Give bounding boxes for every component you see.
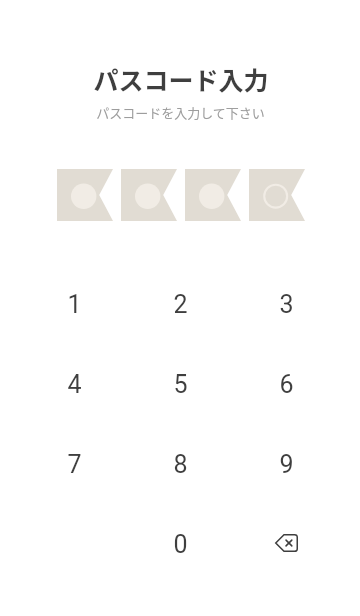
- button[interactable]: 6: [233, 344, 339, 424]
- staticText: 2: [173, 290, 188, 319]
- button[interactable]: 8: [127, 424, 233, 504]
- button[interactable]: 3: [233, 264, 339, 344]
- button[interactable]: 2: [127, 264, 233, 344]
- staticText: パスコードを入力して下さい: [96, 103, 265, 122]
- staticText: 9: [279, 450, 294, 479]
- button[interactable]: 1: [21, 264, 127, 344]
- button[interactable]: 4: [21, 344, 127, 424]
- staticText: 6: [279, 370, 294, 399]
- button[interactable]: 5: [127, 344, 233, 424]
- staticText: 1: [67, 290, 82, 319]
- staticText: 7: [67, 450, 82, 479]
- staticText: 3: [279, 290, 294, 319]
- staticText: 8: [173, 450, 188, 479]
- staticText: 4: [67, 370, 82, 399]
- button[interactable]: 9: [233, 424, 339, 504]
- staticText: パスコード入力: [93, 61, 269, 97]
- button[interactable]: 7: [21, 424, 127, 504]
- staticText: 0: [173, 530, 188, 559]
- staticText: 5: [173, 370, 188, 399]
- button[interactable]: Backspace: [233, 504, 339, 584]
- button[interactable]: 0: [127, 504, 233, 584]
